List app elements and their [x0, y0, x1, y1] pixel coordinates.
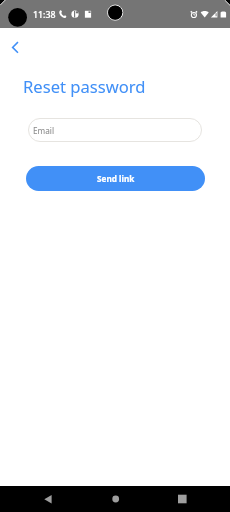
- button[interactable]: Email: [28, 118, 202, 142]
- button[interactable]: Recent apps: [160, 486, 203, 512]
- button[interactable]: Back: [2, 32, 30, 60]
- staticText: 11:38: [33, 9, 56, 21]
- staticText: Email: [33, 125, 55, 136]
- button[interactable]: Back: [20, 486, 76, 512]
- button[interactable]: Send link: [26, 166, 205, 191]
- staticText: Reset password: [23, 75, 146, 98]
- staticText: Send link: [97, 173, 135, 184]
- button[interactable]: Home: [94, 486, 136, 512]
